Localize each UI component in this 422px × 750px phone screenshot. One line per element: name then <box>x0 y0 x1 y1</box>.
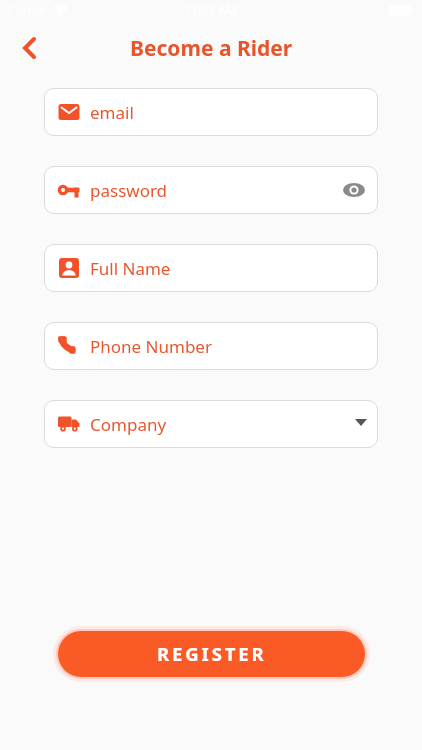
button[interactable] <box>18 37 40 59</box>
staticText: email <box>90 101 134 124</box>
staticText: Phone Number <box>90 335 212 358</box>
staticText: REGISTER <box>157 641 267 666</box>
button[interactable]: Phone Number <box>44 322 378 370</box>
button[interactable]: Company <box>44 400 378 448</box>
staticText: Become a Rider <box>130 34 293 63</box>
staticText: Company <box>90 413 167 436</box>
staticText: password <box>90 179 168 202</box>
button[interactable]: email <box>44 88 378 136</box>
button[interactable]: password <box>44 166 378 214</box>
staticText: Full Name <box>90 257 171 280</box>
button[interactable]: REGISTER <box>58 631 365 677</box>
button[interactable]: Full Name <box>44 244 378 292</box>
